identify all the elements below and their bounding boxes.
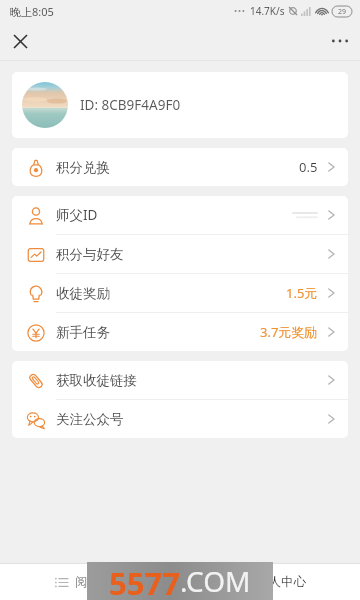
- staticText: 积分兑换: [56, 159, 110, 176]
- staticText: 14.7K/s: [250, 4, 285, 18]
- button[interactable]: 师父ID: [12, 196, 348, 234]
- staticText: 阅读文章: [75, 574, 125, 590]
- button[interactable]: More options: [320, 22, 360, 60]
- button[interactable]: 收徒奖励: [12, 274, 348, 312]
- staticText: ID: 8CB9F4A9F0: [80, 96, 181, 114]
- staticText: 收徒奖励: [56, 285, 110, 302]
- button[interactable]: Close: [0, 22, 40, 60]
- button[interactable]: 积分兑换: [12, 148, 348, 186]
- button[interactable]: 积分与好友: [12, 235, 348, 273]
- staticText: 29: [338, 7, 347, 17]
- staticText: 获取收徒链接: [56, 372, 137, 389]
- staticText: 个人中心: [256, 574, 306, 590]
- button[interactable]: ID: 8CB9F4A9F0: [12, 72, 348, 138]
- staticText: 0.5: [299, 158, 318, 176]
- staticText: 1.5元: [286, 284, 318, 302]
- button[interactable]: 关注公众号: [12, 400, 348, 438]
- staticText: 师父ID: [56, 206, 98, 224]
- staticText: 关注公众号: [56, 411, 124, 428]
- button[interactable]: 个人中心: [180, 564, 360, 600]
- button[interactable]: 新手任务: [12, 313, 348, 351]
- staticText: 新手任务: [56, 324, 110, 341]
- staticText: 晚上8:05: [10, 4, 54, 19]
- staticText: 5577: [109, 562, 180, 600]
- staticText: .COM: [180, 562, 251, 600]
- button[interactable]: 阅读文章: [0, 564, 179, 600]
- button[interactable]: 获取收徒链接: [12, 361, 348, 399]
- staticText: 3.7元奖励: [260, 323, 318, 341]
- staticText: 积分与好友: [56, 246, 124, 263]
